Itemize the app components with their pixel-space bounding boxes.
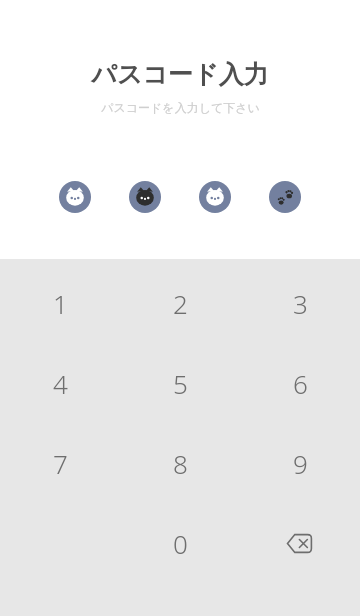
staticText: 2 bbox=[173, 286, 188, 321]
button[interactable]: Passcode character 2 bbox=[129, 181, 161, 213]
button[interactable]: 9 bbox=[240, 423, 360, 503]
button[interactable]: 0 bbox=[120, 503, 240, 583]
staticText: 3 bbox=[293, 286, 308, 321]
staticText: 4 bbox=[53, 366, 68, 401]
button[interactable]: Passcode character 1 bbox=[59, 181, 91, 213]
button[interactable]: Passcode character 3 bbox=[199, 181, 231, 213]
staticText: パスコード入力 bbox=[91, 59, 269, 90]
button[interactable]: 3 bbox=[240, 263, 360, 343]
staticText: 7 bbox=[53, 446, 68, 481]
staticText: パスコードを入力して下さい bbox=[101, 100, 260, 115]
button[interactable]: 8 bbox=[120, 423, 240, 503]
button[interactable]: 7 bbox=[0, 423, 120, 503]
staticText: 1 bbox=[53, 286, 68, 321]
button[interactable]: 1 bbox=[0, 263, 120, 343]
button[interactable]: Backspace bbox=[240, 503, 360, 583]
staticText: 9 bbox=[293, 446, 308, 481]
staticText: 0 bbox=[173, 526, 188, 561]
button[interactable]: Passcode character 4 bbox=[269, 181, 301, 213]
button[interactable]: 6 bbox=[240, 343, 360, 423]
staticText: 6 bbox=[293, 366, 308, 401]
button[interactable]: 2 bbox=[120, 263, 240, 343]
staticText: 5 bbox=[173, 366, 188, 401]
button[interactable]: 5 bbox=[120, 343, 240, 423]
button[interactable]: 4 bbox=[0, 343, 120, 423]
staticText: 8 bbox=[173, 446, 188, 481]
